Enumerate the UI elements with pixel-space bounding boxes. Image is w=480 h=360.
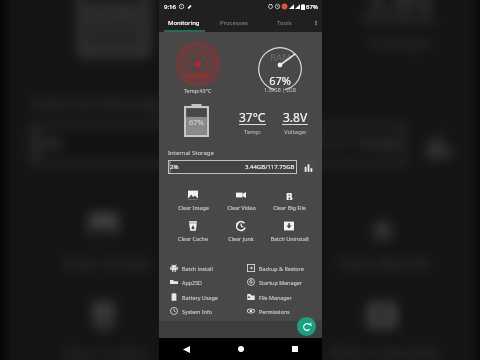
button[interactable]: Monitoring <box>159 13 209 32</box>
button[interactable]: App2SD <box>170 275 247 289</box>
staticText: Clear Junk <box>205 341 280 360</box>
button[interactable]: Battery Usage <box>170 290 247 304</box>
staticText: 67% <box>269 73 291 88</box>
staticText: Voltage: <box>284 128 307 136</box>
button[interactable]: Clear Video <box>217 190 265 211</box>
button[interactable]: Clear Junk <box>217 221 265 242</box>
button[interactable]: Home <box>214 338 268 360</box>
button[interactable]: System Info <box>170 304 247 318</box>
button[interactable]: B <box>312 211 452 272</box>
staticText: Permissions <box>259 308 290 315</box>
staticText: 3.8V <box>283 109 308 125</box>
staticText: Backup & Restore <box>259 265 304 272</box>
button[interactable]: Refresh <box>297 317 316 336</box>
staticText: Battery Usage <box>182 294 218 301</box>
staticText: Clear Cache <box>178 235 208 242</box>
staticText: App2SD <box>182 279 203 286</box>
button[interactable]: Back <box>159 338 214 360</box>
staticText: Clear Big File <box>273 204 306 211</box>
staticText: 37°C <box>239 109 266 125</box>
staticText: Batch install <box>182 265 213 272</box>
staticText: 3.8V <box>365 0 437 22</box>
staticText: 2% <box>170 163 179 171</box>
staticText: Internal Storage <box>31 92 164 115</box>
button[interactable]: Batch install <box>170 261 247 275</box>
button[interactable]: Permissions <box>247 304 317 318</box>
staticText: 67% <box>92 0 135 28</box>
staticText: 37°C <box>237 0 315 22</box>
staticText: Tools <box>277 19 292 27</box>
button[interactable]: File Manager <box>247 290 317 304</box>
staticText: Temp:43°C <box>184 87 212 94</box>
button[interactable]: More options <box>309 13 322 32</box>
button[interactable]: Batch Uninstall <box>265 221 313 242</box>
staticText: 3.44GB/117.75GB <box>245 163 295 171</box>
staticText: 9:16 <box>164 3 176 11</box>
staticText: System Info <box>182 308 212 315</box>
button[interactable]: Clear Image <box>34 211 173 272</box>
staticText: Startup Manager <box>259 279 303 286</box>
button[interactable]: Temp:43°C <box>164 36 232 98</box>
button[interactable]: RAM <box>247 42 312 98</box>
staticText: File Manager <box>259 294 292 301</box>
button[interactable]: Clear Image <box>169 190 217 211</box>
button[interactable]: Batch Uninstall <box>312 301 452 360</box>
staticText: Internal Storage <box>168 149 214 157</box>
staticText: Temp: <box>251 31 304 54</box>
staticText: Clear Junk <box>228 235 254 242</box>
staticText: 67% <box>189 117 204 127</box>
staticText: Monitoring <box>168 19 200 27</box>
staticText: RAM <box>270 51 291 64</box>
button[interactable]: Processes <box>209 13 259 32</box>
staticText: 1.39GB | 2GB <box>264 87 296 94</box>
staticText: Batch Uninstall <box>270 235 309 242</box>
button[interactable]: 2% <box>31 124 405 165</box>
button[interactable]: Backup & Restore <box>247 261 317 275</box>
button[interactable]: B <box>265 190 313 211</box>
staticText: Clear Image <box>178 204 209 211</box>
button[interactable]: Tools <box>259 13 309 32</box>
button[interactable]: Clear Junk <box>173 301 312 360</box>
button[interactable]: 2% <box>168 160 297 174</box>
staticText: Clear Video <box>227 204 256 211</box>
button[interactable]: Clear Cache <box>34 301 173 360</box>
staticText: 3.44GB/117.75GB <box>254 133 399 156</box>
staticText: B <box>373 211 394 240</box>
staticText: B <box>286 190 293 200</box>
button[interactable]: Recent apps <box>268 338 322 360</box>
staticText: Temp: <box>244 128 262 136</box>
button[interactable]: Storage analysis <box>300 159 316 175</box>
staticText: Clear Video <box>202 252 286 272</box>
button[interactable]: Startup Manager <box>247 275 317 289</box>
staticText: 67% <box>306 3 318 11</box>
button[interactable]: Clear Cache <box>169 221 217 242</box>
button[interactable]: Storage analysis <box>414 121 460 167</box>
staticText: 2% <box>37 133 63 156</box>
staticText: Processes <box>220 19 248 27</box>
button[interactable]: Clear Video <box>173 211 312 272</box>
